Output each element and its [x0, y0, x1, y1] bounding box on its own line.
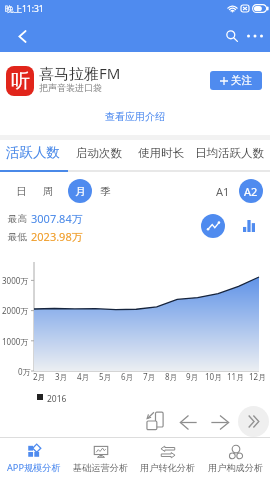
- staticText: 最低: [8, 231, 27, 243]
- staticText: A2: [244, 184, 258, 199]
- button[interactable]: 周: [36, 179, 60, 203]
- staticText: 2023.98万: [31, 229, 83, 244]
- staticText: 9月: [186, 371, 199, 382]
- staticText: 3月: [55, 371, 68, 382]
- staticText: 月: [75, 185, 86, 198]
- button[interactable]: 启动次数: [76, 146, 122, 160]
- staticText: 3007.84万: [31, 211, 83, 226]
- button[interactable]: 查看应用介绍: [100, 108, 170, 125]
- button[interactable]: Back: [174, 408, 202, 436]
- staticText: 1000万: [2, 336, 29, 347]
- button[interactable]: 用户转化分析: [134, 438, 202, 480]
- staticText: 4月: [77, 371, 90, 382]
- staticText: 最高: [8, 213, 27, 225]
- button[interactable]: 用户构成分析: [202, 438, 270, 480]
- button[interactable]: 日: [9, 179, 33, 203]
- staticText: 关注: [231, 74, 252, 87]
- staticText: 季: [100, 185, 111, 198]
- button[interactable]: A1: [211, 179, 235, 203]
- button[interactable]: 活跃人数: [6, 144, 60, 161]
- button[interactable]: 季: [93, 179, 117, 203]
- button[interactable]: More: [238, 406, 269, 437]
- staticText: 2000万: [2, 305, 29, 316]
- button[interactable]: Tabs: [141, 407, 169, 435]
- button[interactable]: Search: [218, 22, 246, 50]
- staticText: 基础运营分析: [73, 462, 129, 474]
- staticText: 5月: [99, 371, 112, 382]
- staticText: 6月: [121, 371, 134, 382]
- staticText: 3000万: [2, 275, 29, 286]
- button[interactable]: APP规模分析: [0, 438, 67, 480]
- staticText: 把声音装进口袋: [39, 82, 102, 93]
- button[interactable]: 日均活跃人数: [195, 146, 264, 160]
- staticText: A1: [216, 184, 230, 199]
- button[interactable]: 关注: [210, 71, 262, 90]
- staticText: 12月: [249, 371, 267, 382]
- button[interactable]: 月: [68, 179, 92, 203]
- staticText: 2016: [47, 393, 67, 405]
- button[interactable]: Back: [8, 22, 36, 50]
- staticText: 听: [11, 69, 30, 93]
- button[interactable]: Forward: [206, 408, 234, 436]
- button[interactable]: A2: [239, 179, 263, 203]
- staticText: 周: [43, 185, 54, 198]
- staticText: 喜马拉雅FM: [39, 63, 121, 83]
- staticText: 用户构成分析: [208, 462, 264, 474]
- staticText: 查看应用介绍: [105, 110, 165, 123]
- staticText: 用户转化分析: [140, 462, 196, 474]
- staticText: APP规模分析: [7, 461, 61, 474]
- staticText: 8月: [165, 371, 178, 382]
- button[interactable]: Line chart: [201, 214, 225, 238]
- staticText: 2月: [33, 371, 46, 382]
- staticText: 11月: [227, 371, 245, 382]
- button[interactable]: 使用时长: [138, 146, 184, 160]
- button[interactable]: More options: [241, 22, 269, 50]
- staticText: 日: [16, 185, 27, 198]
- button[interactable]: Bar chart: [237, 214, 261, 238]
- staticText: 0万: [18, 366, 31, 377]
- button[interactable]: 基础运营分析: [67, 438, 134, 480]
- staticText: 晚上11:31: [5, 3, 44, 15]
- staticText: 7月: [143, 371, 156, 382]
- staticText: 10月: [205, 371, 223, 382]
